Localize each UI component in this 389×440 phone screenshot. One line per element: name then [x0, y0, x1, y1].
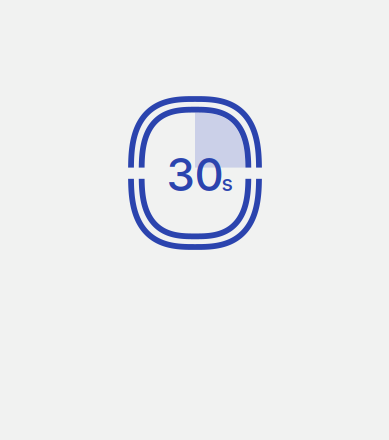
staticText: s — [221, 170, 232, 196]
staticText: 30 — [166, 147, 223, 202]
